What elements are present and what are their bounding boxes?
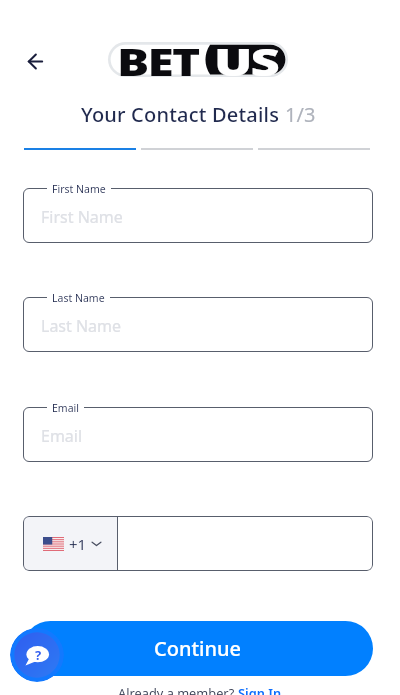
staticText: Email — [52, 401, 79, 415]
staticText: Last Name — [52, 291, 105, 305]
staticText: Email — [41, 425, 83, 447]
staticText: US — [214, 37, 279, 76]
staticText: Last Name — [41, 315, 122, 337]
staticText: 1/3 — [285, 101, 316, 128]
staticText: BET — [117, 37, 200, 76]
button[interactable]: Continue — [23, 621, 373, 676]
button[interactable]: First Name — [23, 188, 373, 243]
button[interactable]: Help chat — [10, 628, 64, 682]
button[interactable]: Last Name — [23, 297, 373, 352]
staticText: +1 — [69, 534, 87, 554]
staticText: First Name — [41, 206, 123, 228]
staticText: Sign In — [238, 684, 282, 695]
staticText: Continue — [154, 635, 242, 662]
staticText: First Name — [52, 182, 106, 196]
button[interactable]: Back — [18, 44, 52, 78]
button[interactable]: +1 — [23, 516, 117, 571]
staticText: Your Contact Details — [81, 101, 280, 128]
button[interactable]: Email — [23, 407, 373, 462]
staticText: ? — [35, 646, 42, 664]
staticText: Already a member? — [118, 684, 238, 695]
